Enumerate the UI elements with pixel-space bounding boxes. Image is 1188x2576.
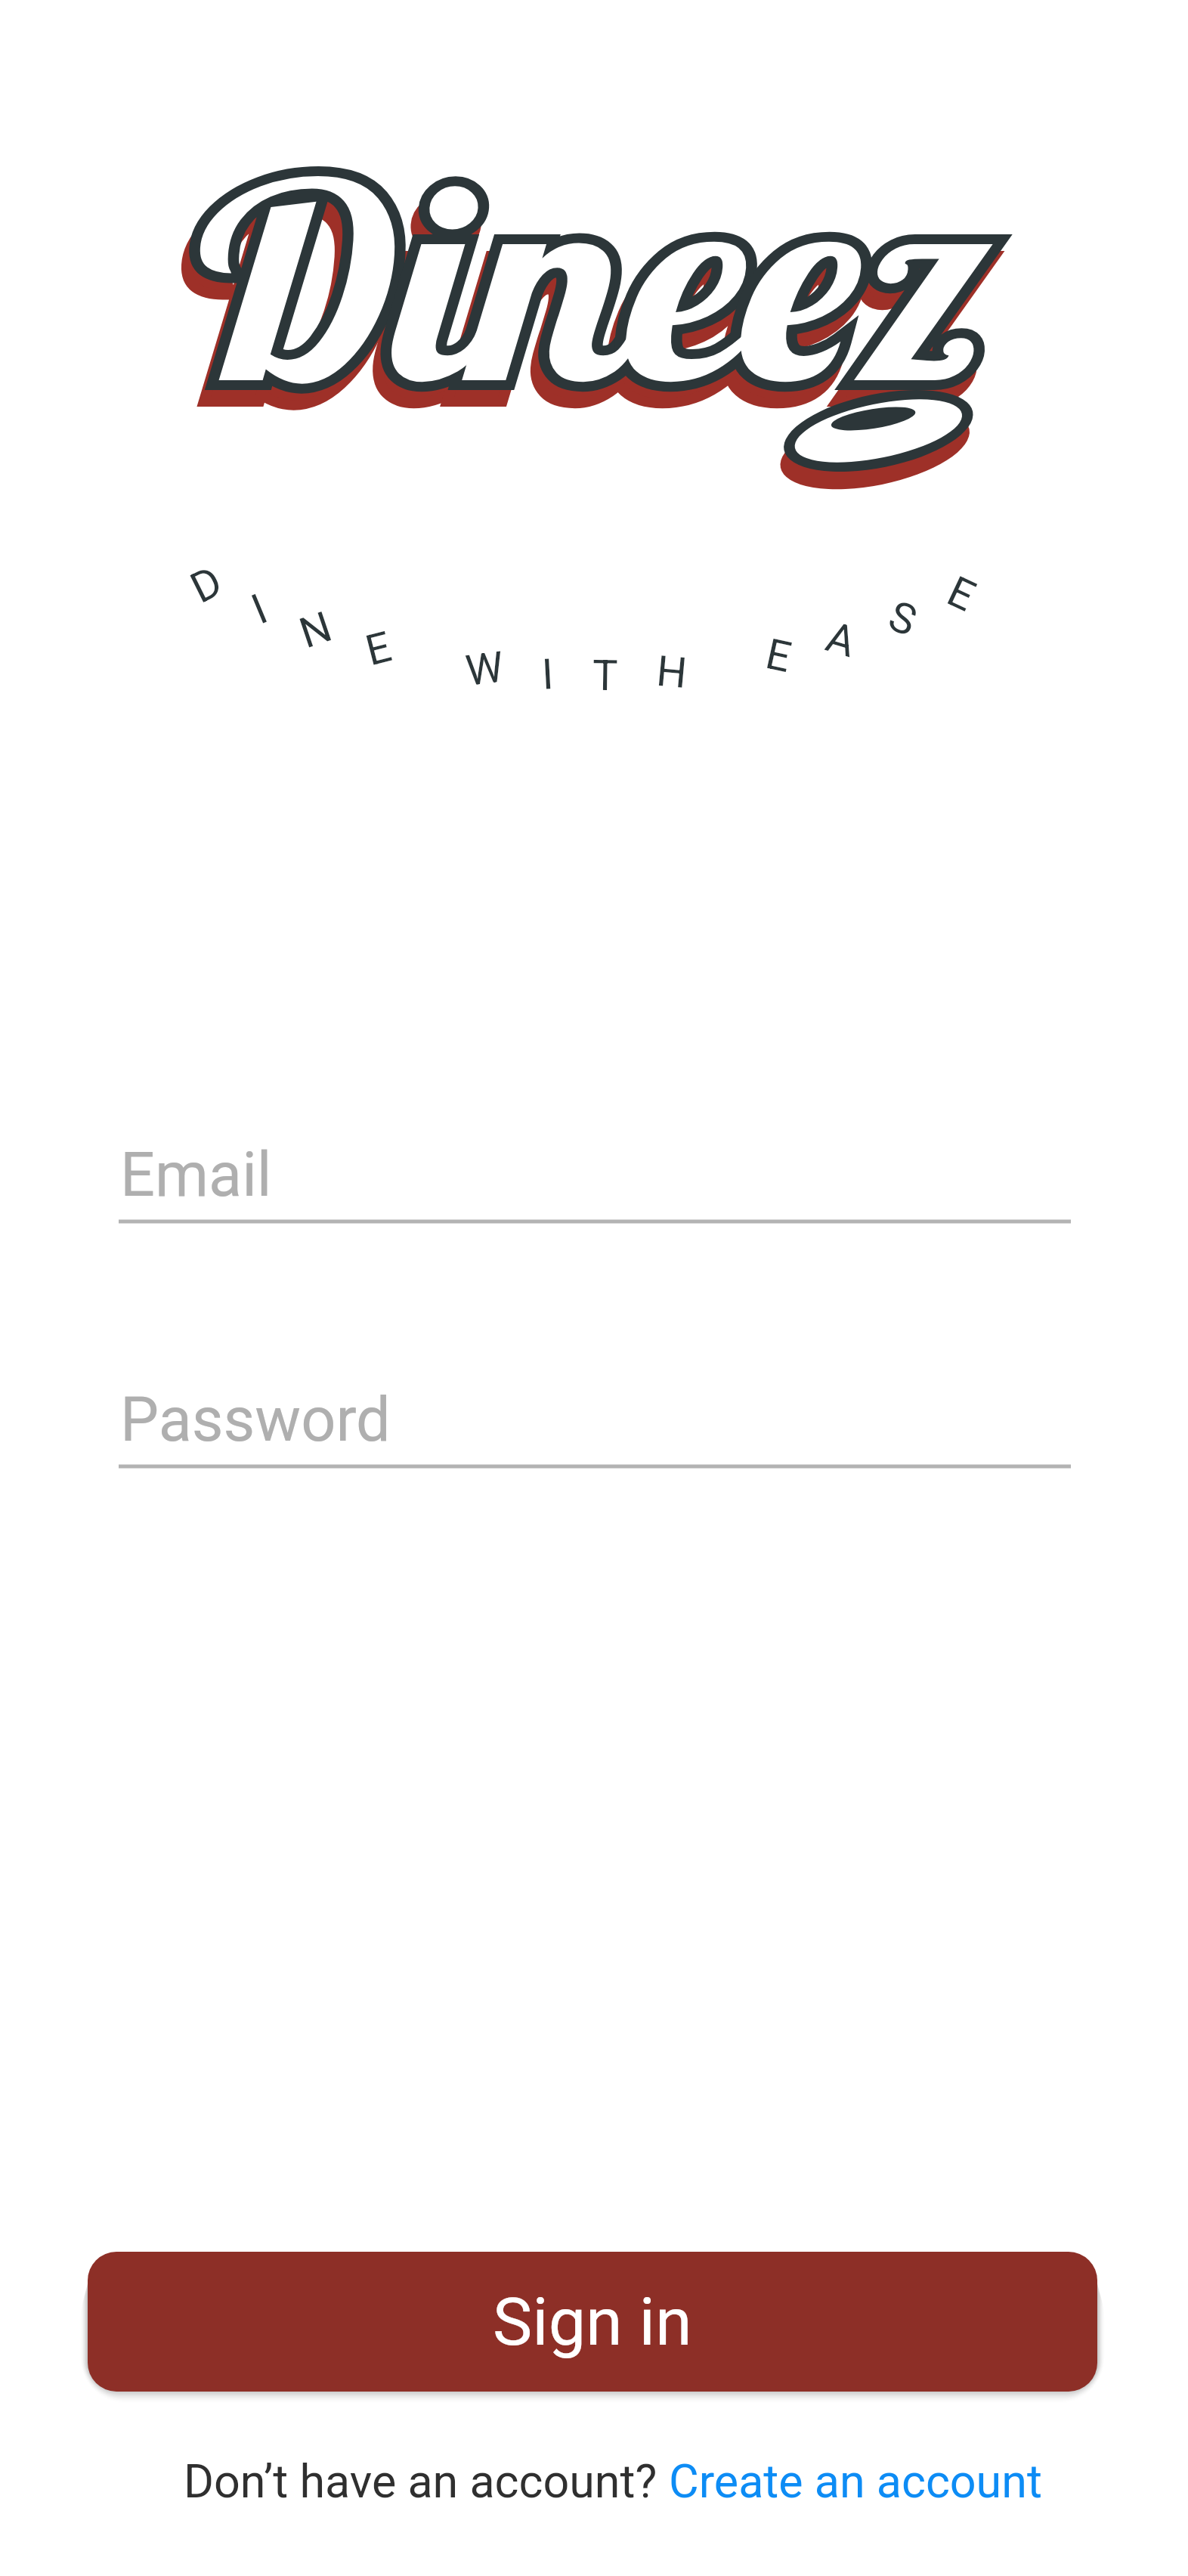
button[interactable]: Create an account <box>669 2454 1042 2508</box>
staticText: Password <box>120 1384 391 1456</box>
staticText: Don’t have an account? <box>184 2454 669 2508</box>
staticText: Sign in <box>493 2283 692 2361</box>
button[interactable]: Email <box>119 1111 1071 1225</box>
button[interactable]: Password <box>119 1356 1071 1469</box>
staticText: Email <box>120 1139 272 1211</box>
button[interactable]: Sign in <box>88 2252 1097 2392</box>
